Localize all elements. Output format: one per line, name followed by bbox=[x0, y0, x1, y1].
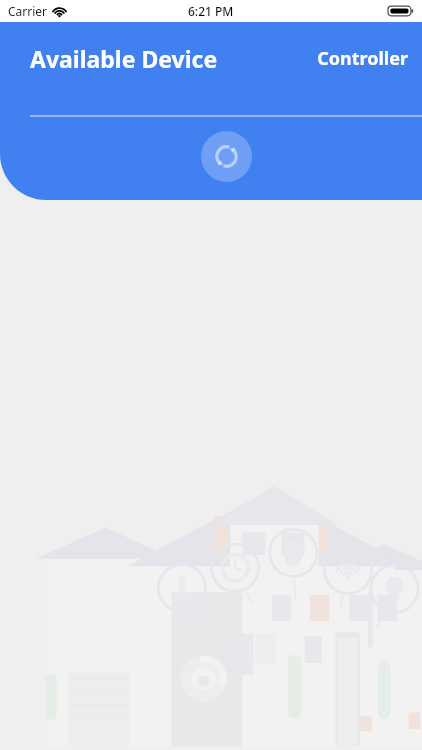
button[interactable]: Refresh bbox=[201, 131, 252, 182]
staticText: Carrier bbox=[8, 3, 48, 19]
staticText: Controller bbox=[317, 46, 408, 71]
staticText: 6:21 PM bbox=[188, 3, 234, 19]
button[interactable]: Controller bbox=[313, 40, 412, 77]
staticText: Available Device bbox=[30, 43, 218, 74]
